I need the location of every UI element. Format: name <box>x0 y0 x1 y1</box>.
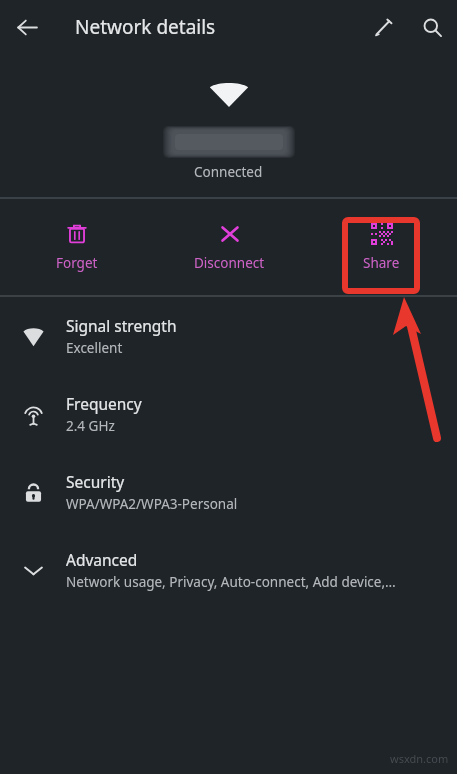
staticText: WPA/WPA2/WPA3-Personal <box>66 495 238 513</box>
button[interactable]: Security <box>0 453 457 531</box>
staticText: 2.4 GHz <box>66 417 115 435</box>
staticText: Connected <box>194 163 263 181</box>
staticText: Network usage, Privacy, Auto-connect, Ad… <box>66 573 396 591</box>
staticText: Share <box>363 254 400 272</box>
button[interactable]: Disconnect <box>153 199 305 295</box>
button[interactable]: Forget <box>0 199 153 295</box>
button[interactable]: Edit <box>359 3 407 51</box>
staticText: Security <box>66 471 125 492</box>
staticText: Signal strength <box>66 315 177 336</box>
staticText: Frequency <box>66 393 142 414</box>
staticText: Forget <box>56 254 98 272</box>
button[interactable]: Back <box>0 0 54 54</box>
staticText: Disconnect <box>194 254 265 272</box>
button[interactable]: Signal strength <box>0 297 457 375</box>
button[interactable]: Frequency <box>0 375 457 453</box>
staticText: Advanced <box>66 549 138 570</box>
staticText: Excellent <box>66 339 123 357</box>
button[interactable]: Advanced <box>0 531 457 609</box>
button[interactable]: Search <box>407 2 457 52</box>
button[interactable]: Share <box>305 199 457 295</box>
staticText: Network details <box>75 14 216 40</box>
staticText: wsxdn.com <box>390 751 449 766</box>
